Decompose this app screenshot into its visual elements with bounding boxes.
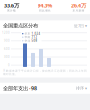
staticText: 近7日 ▾ [74,23,87,28]
staticText: 712 [31,35,37,39]
staticText: 1200 [2,31,10,34]
staticText: 华东 [24,32,30,35]
staticText: 全国重点区分布 [3,22,38,29]
staticText: 累计额 [7,9,16,12]
staticText: 华南 [24,36,30,39]
button[interactable]: 排序 ▾ [76,86,87,91]
staticText: 26.4万 [71,2,86,9]
staticText: 94.3% [37,2,52,9]
staticText: 1,024 [31,32,40,35]
staticText: 本月新增 [72,9,84,12]
staticText: 300 [4,55,10,59]
staticText: 全部年支出 · 98 [3,85,37,92]
button[interactable]: 近7日 ▾ [74,23,87,28]
staticText: 排序 ▾ [76,86,87,91]
staticText: 华北 [24,39,30,42]
staticText: 同比增长 [39,9,51,12]
staticText: 900 [4,39,10,42]
staticText: 600 [4,47,10,51]
staticText: 0 [8,63,10,67]
staticText: 508 [31,39,37,42]
staticText: 33.6万 [4,2,19,9]
staticText: ※ 数据来源于平台统计口径，按自然月汇总更新；同比为上年同期对比值。 [3,69,87,76]
